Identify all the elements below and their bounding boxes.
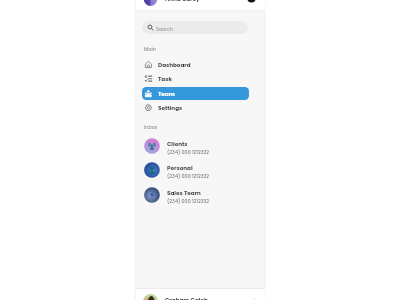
button[interactable]: Search	[142, 21, 248, 34]
button[interactable]	[136, 0, 265, 11]
staticText: Sales Team	[167, 189, 201, 197]
button[interactable]	[136, 289, 265, 300]
button[interactable]: Log out	[248, 294, 258, 300]
staticText: Task	[158, 75, 172, 83]
staticText: Inbox	[144, 124, 158, 131]
button[interactable]: Settings	[142, 101, 249, 114]
button[interactable]: Sales Team	[142, 184, 249, 206]
button[interactable]: Dashboard	[142, 58, 249, 71]
staticText: Main	[144, 46, 156, 53]
staticText: Settings	[158, 104, 183, 112]
staticText: Dashboard	[158, 61, 191, 69]
button[interactable]: Task	[142, 72, 249, 85]
staticText: Team	[158, 90, 175, 98]
staticText: (234) 000 1212332	[167, 173, 210, 180]
staticText: Clients	[167, 140, 188, 148]
staticText: Anna Carey	[165, 0, 200, 3]
button[interactable]: Team	[142, 87, 249, 100]
button[interactable]: Personal	[142, 159, 249, 181]
staticText: Graham Caleb	[165, 296, 208, 300]
staticText: Personal	[167, 164, 193, 172]
staticText: Search	[156, 26, 173, 33]
button[interactable]: Clients	[142, 135, 249, 157]
staticText: (234) 000 1212332	[167, 198, 210, 205]
staticText: (234) 000 1212332	[167, 149, 210, 156]
button[interactable]	[143, 294, 158, 300]
